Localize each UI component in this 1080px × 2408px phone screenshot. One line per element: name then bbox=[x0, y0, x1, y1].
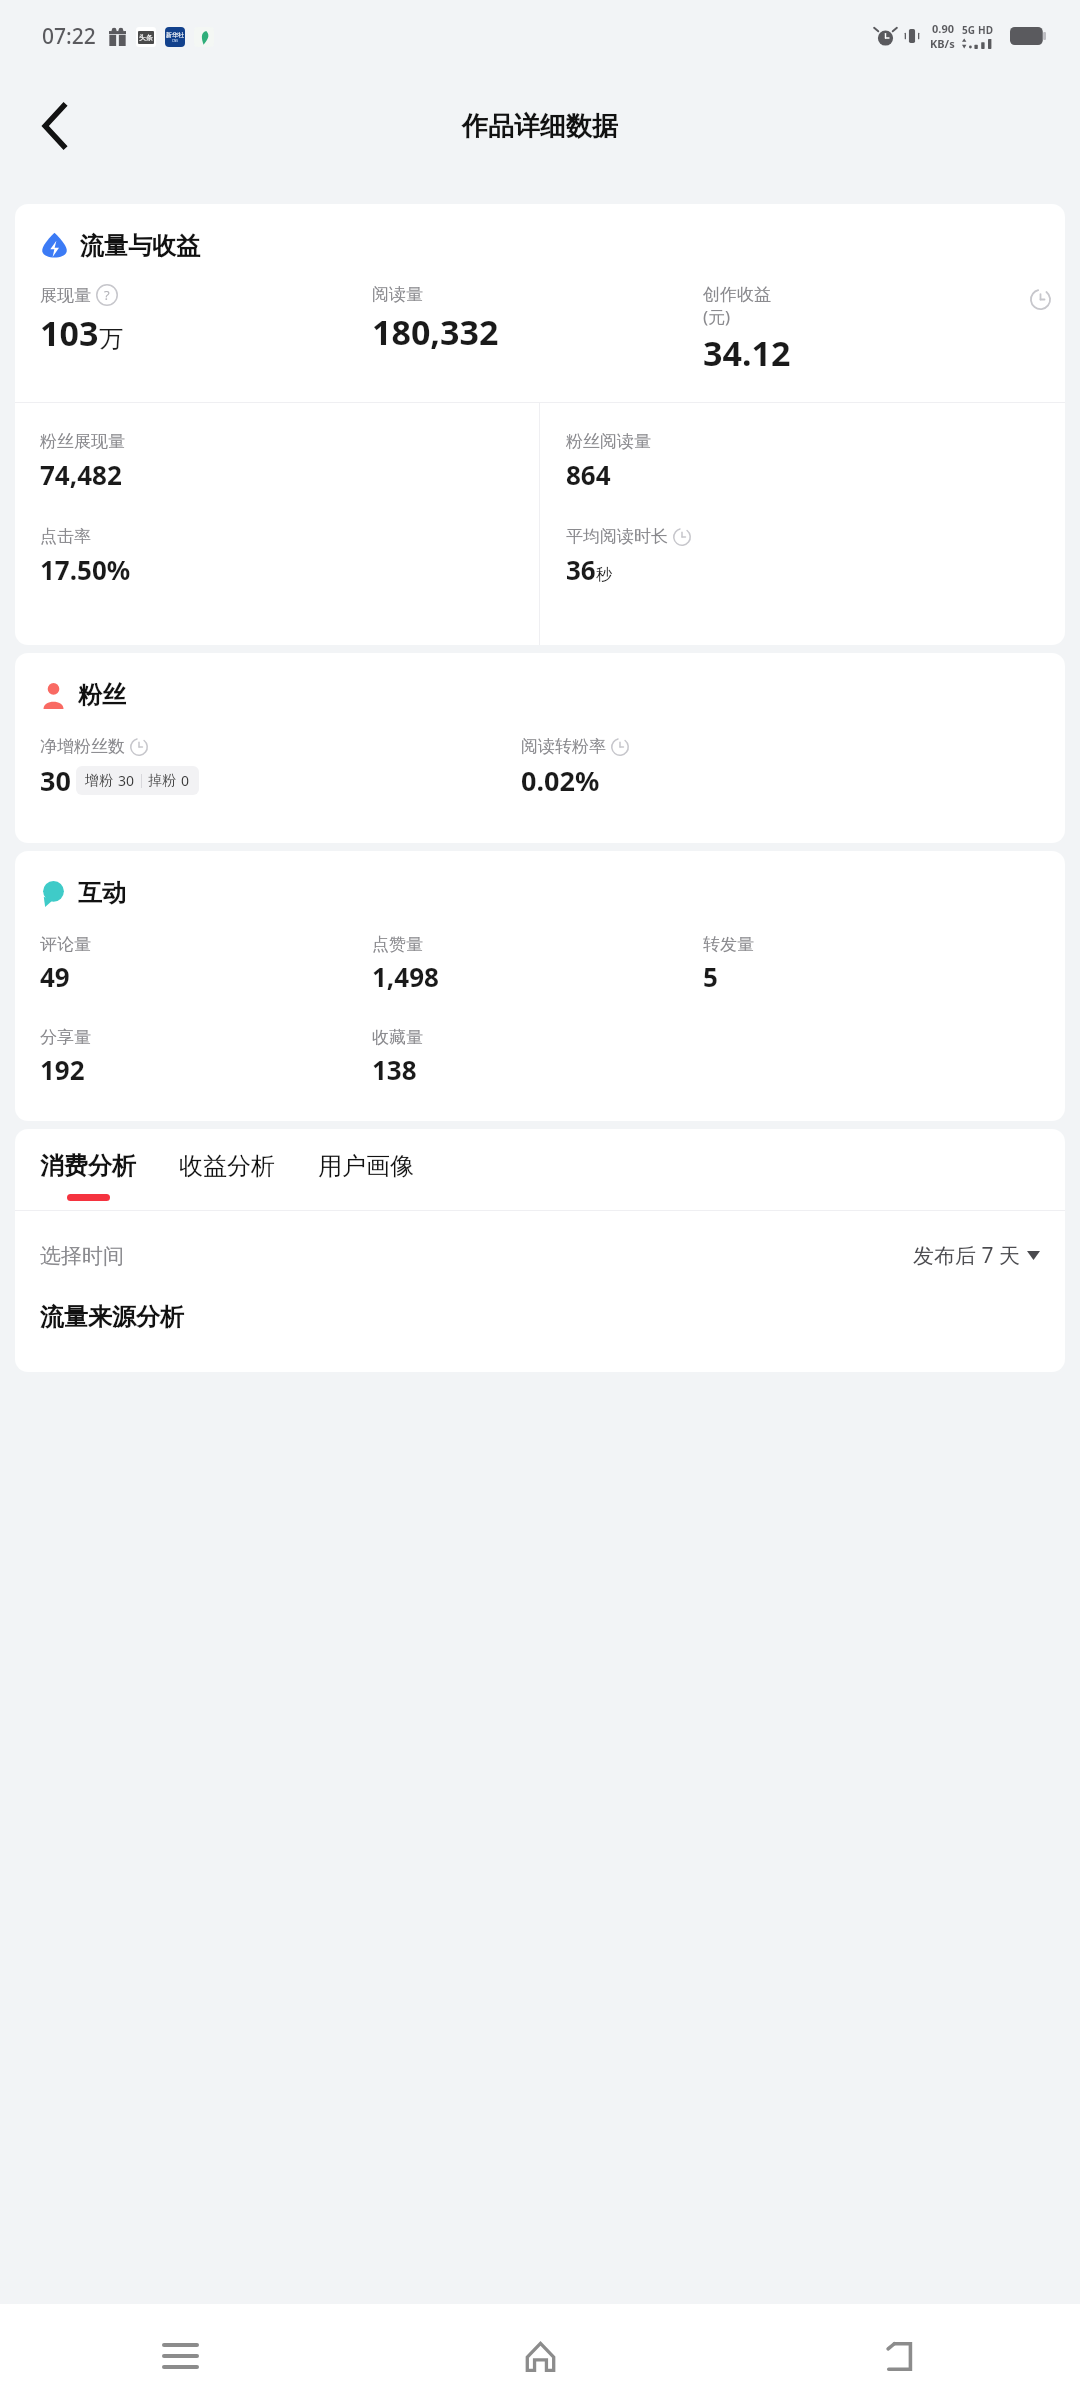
staticText: 阅读量 bbox=[372, 284, 423, 305]
button[interactable]: Back bbox=[720, 2304, 1080, 2408]
staticText: 0.90 bbox=[932, 21, 954, 36]
staticText: 103 bbox=[40, 310, 99, 356]
staticText: 消费分析 bbox=[40, 1151, 136, 1181]
staticText: 收藏量 bbox=[372, 1027, 423, 1048]
staticText: 74,482 bbox=[40, 457, 122, 492]
staticText: 34.12 bbox=[703, 330, 791, 376]
staticText: (元) bbox=[703, 305, 731, 328]
staticText: 万 bbox=[99, 324, 123, 354]
staticText: 864 bbox=[566, 457, 611, 492]
button[interactable]: 消费分析 bbox=[40, 1151, 136, 1210]
staticText: 平均阅读时长 bbox=[566, 526, 668, 547]
staticText: 阅读转粉率 bbox=[521, 736, 606, 757]
button[interactable]: Home bbox=[360, 2304, 720, 2408]
button[interactable]: 收益分析 bbox=[179, 1151, 275, 1210]
staticText: 互动 bbox=[78, 878, 126, 908]
button[interactable]: Back bbox=[18, 90, 90, 162]
staticText: 粉丝展现量 bbox=[40, 431, 125, 452]
staticText: 秒 bbox=[596, 565, 612, 585]
staticText: 增粉 bbox=[85, 772, 113, 790]
staticText: 07:22 bbox=[42, 22, 96, 51]
staticText: 头条 bbox=[139, 33, 153, 42]
staticText: 流量与收益 bbox=[80, 231, 200, 261]
staticText: 36 bbox=[566, 552, 596, 587]
staticText: 净增粉丝数 bbox=[40, 736, 125, 757]
staticText: 创作收益 bbox=[703, 284, 771, 305]
staticText: 新华社 bbox=[166, 31, 184, 39]
staticText: 5 bbox=[703, 959, 718, 994]
staticText: 点赞量 bbox=[372, 934, 423, 955]
staticText: 评论量 bbox=[40, 934, 91, 955]
staticText: 30 bbox=[118, 771, 135, 790]
staticText: 流量来源分析 bbox=[40, 1302, 184, 1332]
staticText: 粉丝 bbox=[78, 680, 126, 710]
staticText: 49 bbox=[40, 959, 70, 994]
staticText: 转发量 bbox=[703, 934, 754, 955]
staticText: HD bbox=[978, 23, 993, 37]
staticText: KB/s bbox=[930, 36, 955, 51]
staticText: 0.02% bbox=[521, 762, 600, 799]
staticText: 180,332 bbox=[372, 309, 499, 355]
button[interactable]: Recent apps bbox=[0, 2304, 360, 2408]
staticText: 发布后 7 天 bbox=[913, 1241, 1020, 1270]
staticText: CNS bbox=[172, 39, 178, 43]
staticText: 展现量 bbox=[40, 285, 91, 306]
staticText: 选择时间 bbox=[40, 1243, 124, 1269]
button[interactable]: 选择时间 bbox=[15, 1241, 1065, 1270]
staticText: 17.50% bbox=[40, 552, 131, 587]
staticText: 作品详细数据 bbox=[462, 110, 618, 143]
staticText: 30 bbox=[40, 762, 71, 799]
staticText: 粉丝阅读量 bbox=[566, 431, 651, 452]
staticText: 用户画像 bbox=[318, 1151, 414, 1181]
staticText: 5G bbox=[962, 23, 975, 37]
staticText: 收益分析 bbox=[179, 1151, 275, 1181]
staticText: 192 bbox=[40, 1052, 85, 1087]
staticText: ? bbox=[104, 286, 110, 304]
staticText: 掉粉 bbox=[148, 772, 176, 790]
staticText: 0 bbox=[181, 771, 190, 790]
staticText: 138 bbox=[372, 1052, 417, 1087]
staticText: 分享量 bbox=[40, 1027, 91, 1048]
staticText: 1,498 bbox=[372, 959, 439, 994]
button[interactable]: 用户画像 bbox=[318, 1151, 414, 1210]
staticText: 点击率 bbox=[40, 526, 91, 547]
